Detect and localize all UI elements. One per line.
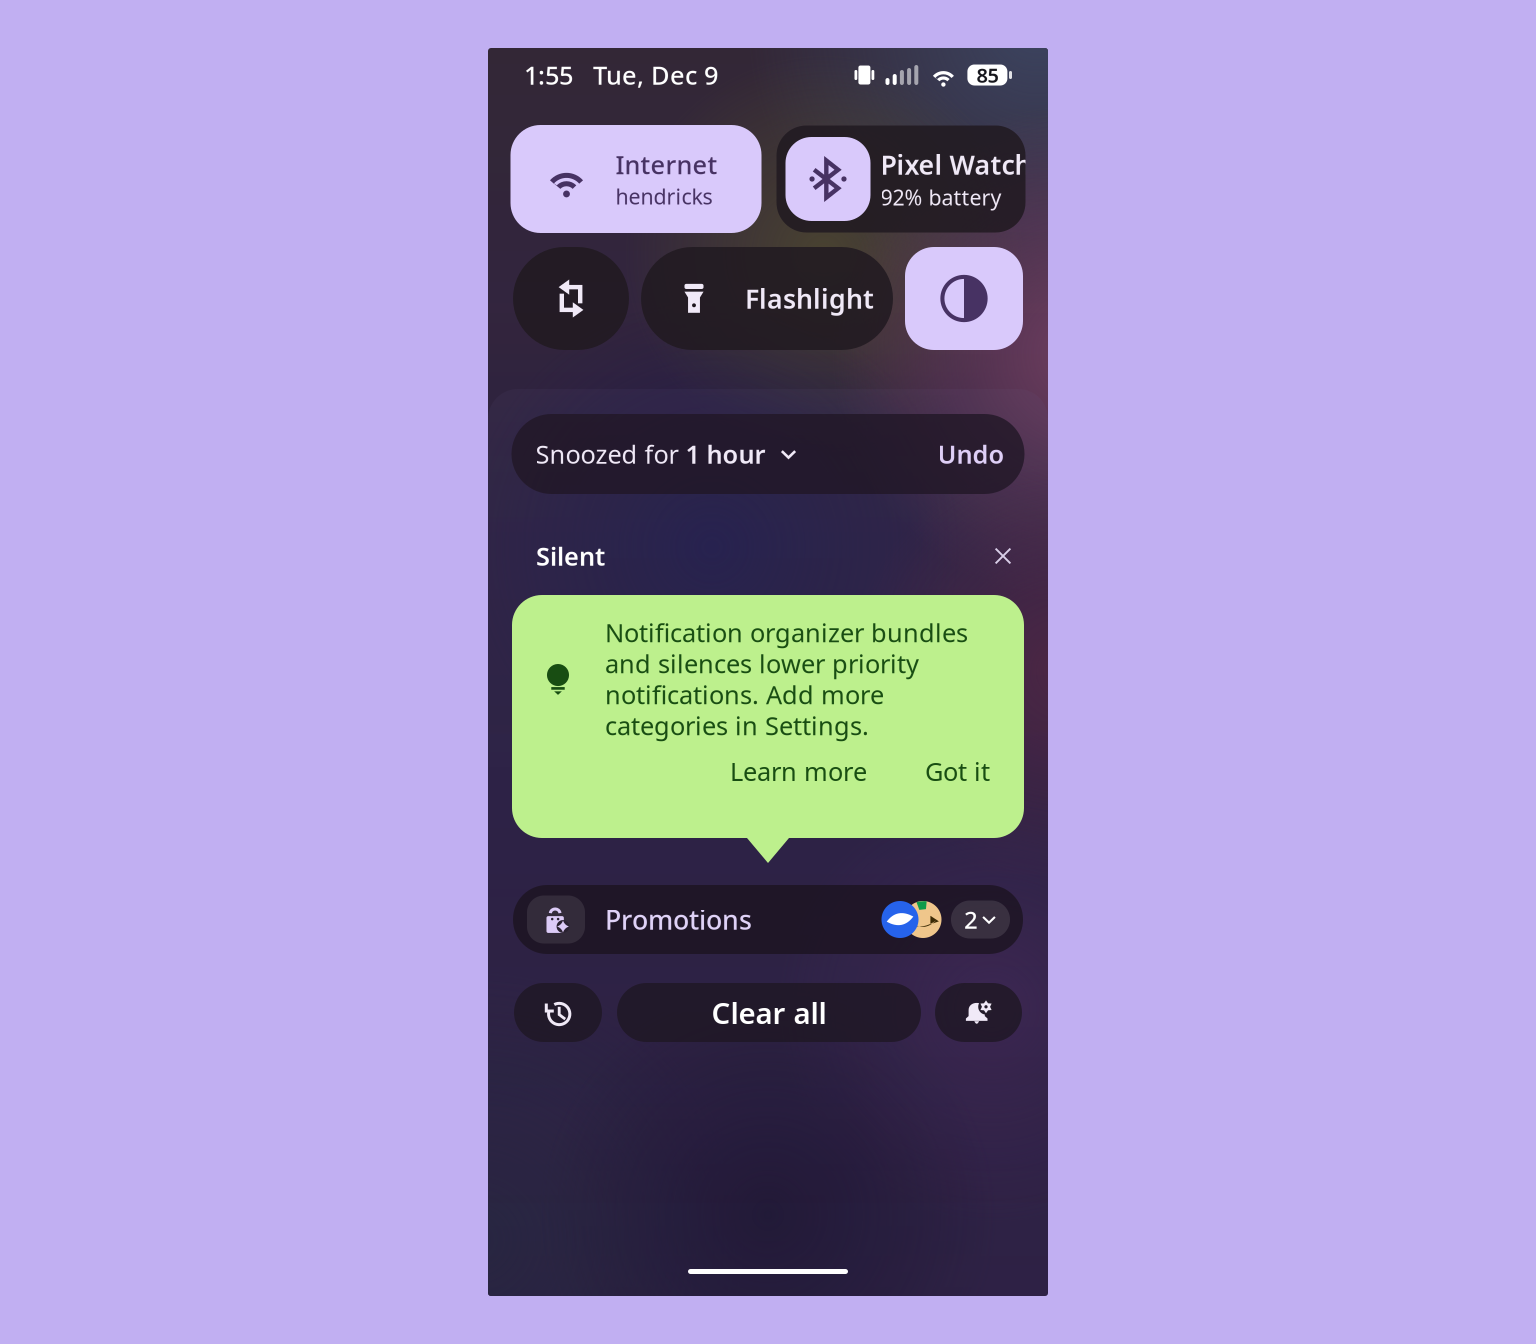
button[interactable]: Auto-rotate xyxy=(513,247,629,350)
button[interactable]: Undo xyxy=(923,425,1004,483)
button[interactable]: Internet xyxy=(510,125,761,233)
staticText: Undo xyxy=(937,437,1004,471)
staticText: Pixel Watch xyxy=(880,147,1031,182)
staticText: notifications. Add more xyxy=(605,678,884,711)
staticText: hendricks xyxy=(615,182,712,210)
button[interactable]: Notification history xyxy=(514,983,602,1042)
staticText: Notification organizer bundles xyxy=(605,616,968,649)
button[interactable]: Promotions xyxy=(513,885,1023,954)
staticText: 85 xyxy=(976,62,998,88)
staticText: and silences lower priority xyxy=(605,647,919,680)
staticText: 92% battery xyxy=(880,183,1001,211)
staticText: Silent xyxy=(536,539,605,573)
staticText: 1 hour xyxy=(685,437,765,471)
staticText: Tue, Dec 9 xyxy=(593,58,718,92)
button[interactable]: Notification settings xyxy=(935,983,1022,1042)
button[interactable]: Flashlight xyxy=(641,247,893,350)
staticText: 2 xyxy=(964,904,978,935)
button[interactable]: Pixel Watch xyxy=(776,125,1025,232)
staticText: Internet xyxy=(615,147,717,181)
staticText: Snoozed for xyxy=(535,437,685,471)
staticText: categories in Settings. xyxy=(605,709,869,742)
button[interactable]: Contrast xyxy=(905,247,1023,350)
staticText: Flashlight xyxy=(745,281,874,316)
staticText: Got it xyxy=(925,754,990,788)
staticText: Clear all xyxy=(711,993,826,1032)
button[interactable]: Snoozed for xyxy=(535,425,797,483)
button[interactable]: Learn more xyxy=(718,744,879,798)
staticText: Learn more xyxy=(730,754,867,788)
button[interactable]: Got it xyxy=(913,744,1002,798)
staticText: 1:55 xyxy=(524,58,573,92)
staticText: Promotions xyxy=(605,902,752,937)
button[interactable]: Dismiss xyxy=(982,535,1024,577)
button[interactable]: Clear all xyxy=(617,983,921,1042)
